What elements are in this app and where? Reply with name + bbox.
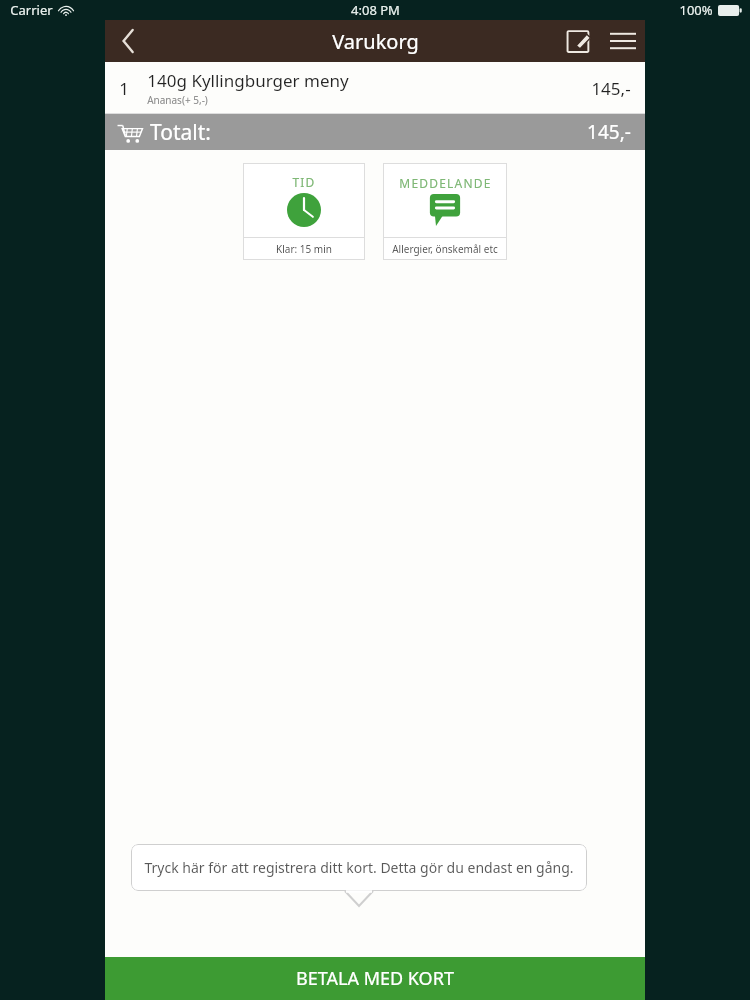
staticText: Tryck här för att registrera ditt kort. … bbox=[144, 858, 574, 877]
staticText: Totalt: bbox=[150, 118, 211, 147]
staticText: TID bbox=[292, 174, 316, 190]
staticText: BETALA MED KORT bbox=[296, 966, 454, 991]
staticText: 145,- bbox=[587, 119, 631, 145]
button[interactable]: Menu bbox=[601, 20, 645, 62]
button[interactable]: TID bbox=[243, 163, 365, 260]
staticText: 1 bbox=[119, 77, 129, 100]
staticText: Allergier, önskemål etc bbox=[392, 242, 498, 256]
staticText: 4:08 PM bbox=[351, 1, 400, 19]
staticText: MEDDELANDE bbox=[399, 175, 492, 191]
button[interactable]: Back bbox=[105, 20, 151, 62]
button[interactable]: BETALA MED KORT bbox=[105, 957, 645, 1000]
staticText: Klar: 15 min bbox=[276, 242, 332, 256]
staticText: 100% bbox=[679, 1, 713, 19]
staticText: Ananas(+ 5,-) bbox=[147, 93, 208, 107]
button[interactable]: Edit bbox=[557, 20, 601, 62]
staticText: 140g Kyllingburger meny bbox=[147, 69, 349, 92]
staticText: 145,- bbox=[591, 77, 631, 100]
button[interactable]: Tryck här för att registrera ditt kort. … bbox=[131, 844, 587, 906]
button[interactable]: 1 bbox=[105, 62, 645, 114]
button[interactable]: MEDDELANDE bbox=[383, 163, 507, 260]
staticText: Carrier bbox=[10, 1, 53, 19]
staticText: Varukorg bbox=[332, 28, 419, 55]
